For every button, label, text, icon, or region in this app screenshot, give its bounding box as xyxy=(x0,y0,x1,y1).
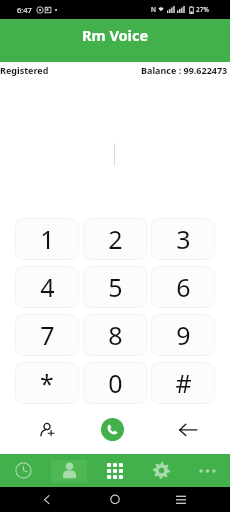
button[interactable]: 5 xyxy=(83,266,147,308)
staticText: 2 xyxy=(108,222,123,256)
button[interactable]: Settings xyxy=(138,454,184,487)
button[interactable]: Contacts xyxy=(46,454,92,487)
button[interactable]: Keypad xyxy=(92,454,138,487)
staticText: 27% xyxy=(196,5,209,14)
staticText: 8 xyxy=(108,318,123,352)
staticText: Balance : 99.622473 xyxy=(141,64,228,76)
staticText: 1 xyxy=(40,222,55,256)
button[interactable]: 0 xyxy=(83,362,147,404)
staticText: 5 xyxy=(108,270,123,304)
button[interactable]: Add contact xyxy=(31,411,65,447)
button[interactable]: 1 xyxy=(15,218,79,260)
button[interactable]: 2 xyxy=(83,218,147,260)
staticText: 6 xyxy=(176,270,191,304)
staticText: # xyxy=(175,366,192,400)
staticText: 0 xyxy=(108,366,123,400)
button[interactable]: Recents xyxy=(171,489,191,509)
button[interactable]: Backspace xyxy=(173,414,205,446)
button[interactable]: Recents xyxy=(0,454,46,487)
staticText: * xyxy=(40,366,54,400)
button[interactable]: # xyxy=(151,362,215,404)
button[interactable]: 3 xyxy=(151,218,215,260)
staticText: 4 xyxy=(40,270,55,304)
button[interactable]: Call xyxy=(101,418,124,441)
button[interactable]: More xyxy=(184,454,230,487)
staticText: Registered xyxy=(0,64,49,76)
button[interactable]: 9 xyxy=(151,314,215,356)
button[interactable]: 4 xyxy=(15,266,79,308)
staticText: 6:47 xyxy=(17,5,32,15)
staticText: 3 xyxy=(176,222,191,256)
button[interactable]: 7 xyxy=(15,314,79,356)
staticText: 9 xyxy=(176,318,191,352)
button[interactable]: Back xyxy=(37,489,57,509)
button[interactable]: * xyxy=(15,362,79,404)
staticText: N xyxy=(151,5,156,14)
button[interactable]: 8 xyxy=(83,314,147,356)
staticText: Rm Voice xyxy=(82,25,149,45)
button[interactable]: 6 xyxy=(151,266,215,308)
button[interactable]: Home xyxy=(105,489,125,509)
staticText: 7 xyxy=(40,318,55,352)
